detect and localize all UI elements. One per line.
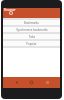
button[interactable]: Synchronise bookmarks	[3, 27, 60, 32]
staticText: Popular	[26, 42, 37, 46]
staticText: Tabs	[29, 35, 35, 39]
staticText: Synchronise bookmarks	[16, 28, 48, 32]
button[interactable]: Home	[29, 80, 34, 85]
button[interactable]: Recents	[45, 80, 50, 85]
staticText: Bookmarks	[24, 21, 39, 25]
button[interactable]: Tabs	[3, 34, 60, 39]
button[interactable]: Profile	[9, 11, 13, 15]
button[interactable]: Popular	[3, 41, 60, 46]
button[interactable]: Bookmarks	[3, 20, 60, 25]
button[interactable]: Back	[14, 80, 19, 85]
staticText: Browser	[4, 8, 16, 12]
